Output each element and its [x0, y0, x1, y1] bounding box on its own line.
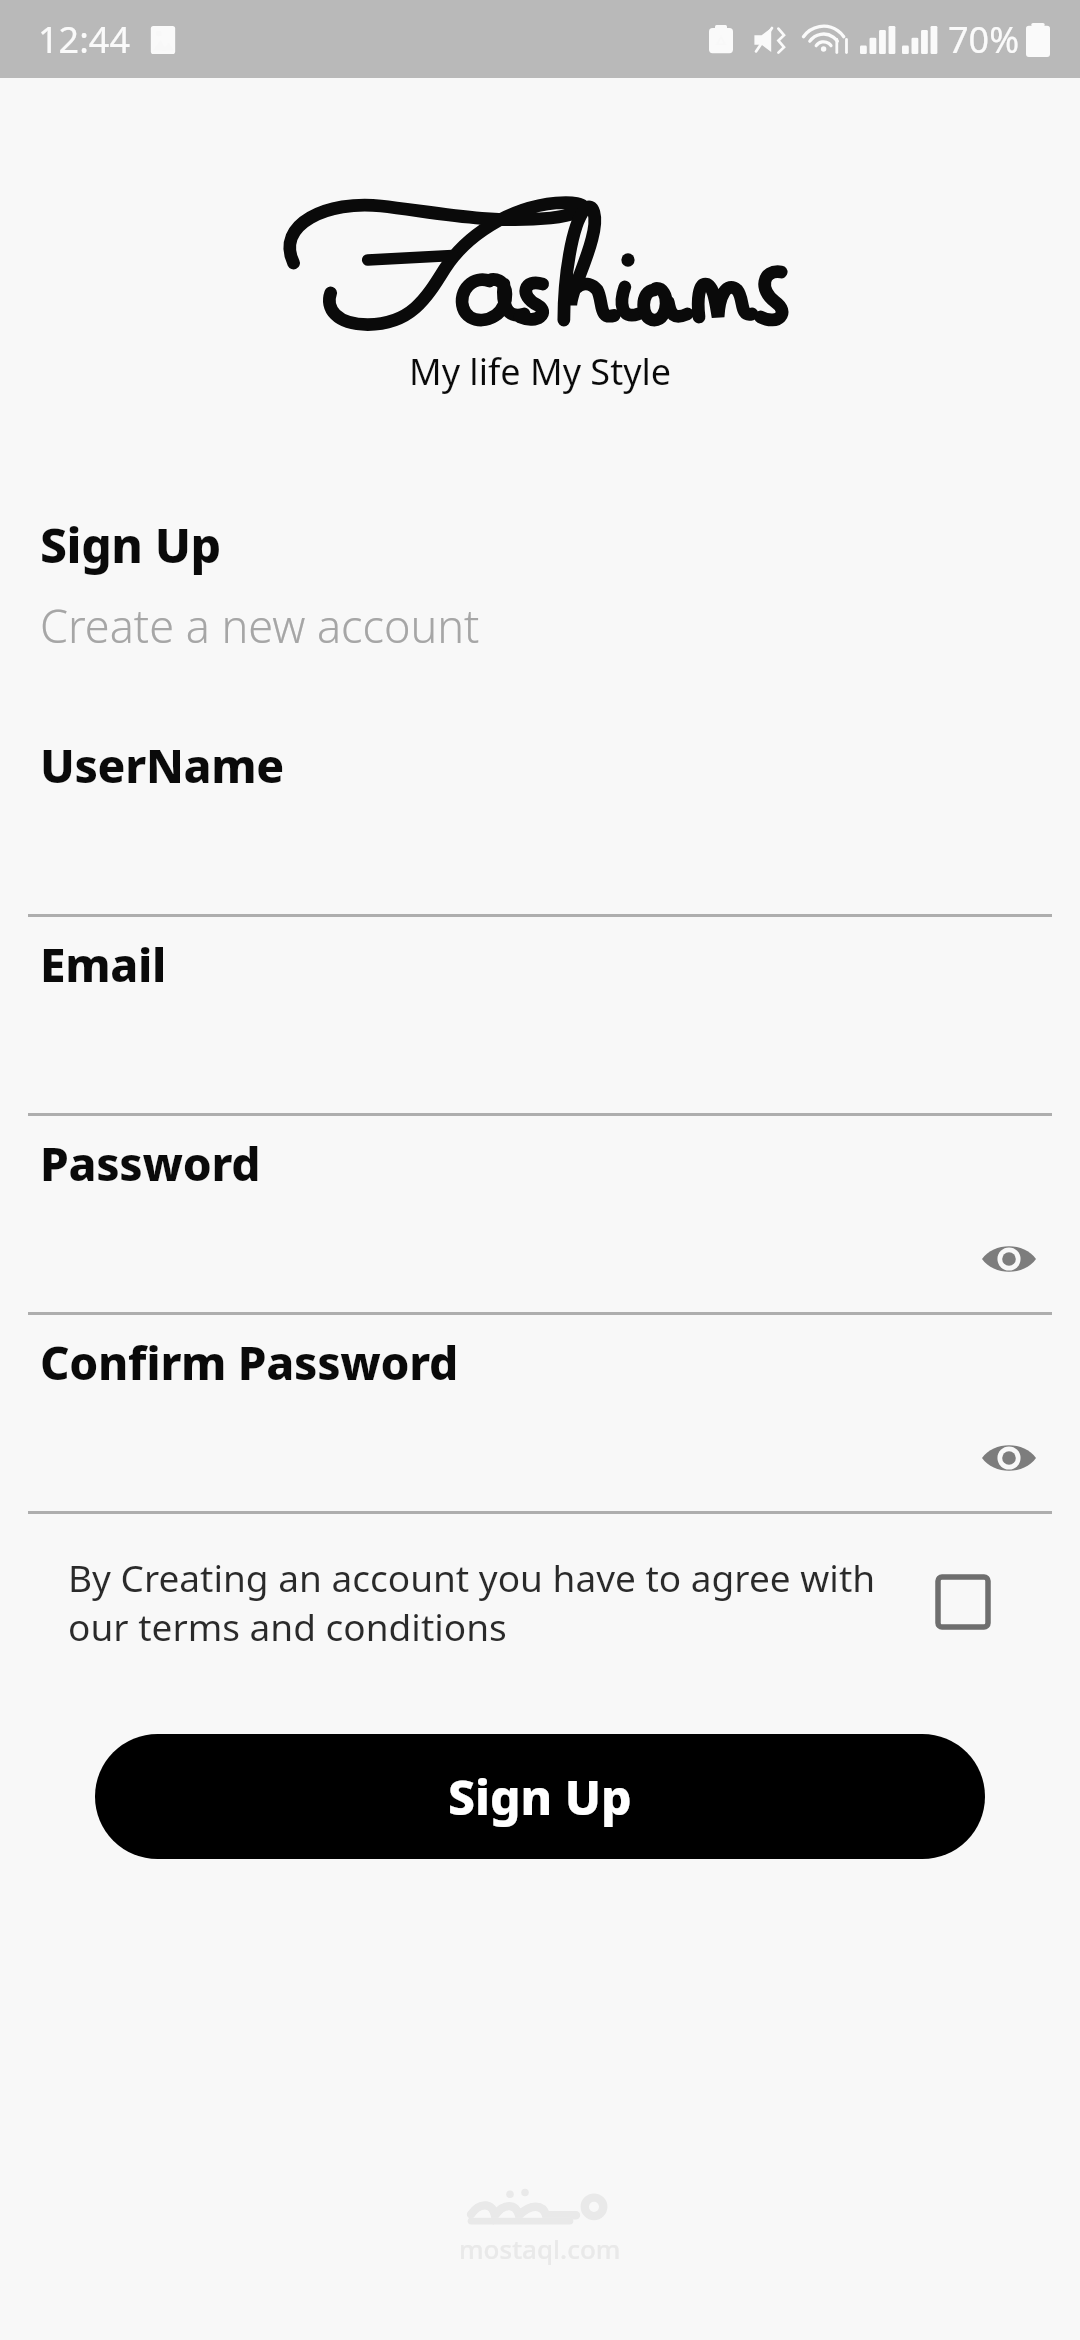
staticText: UserName [40, 734, 284, 797]
button[interactable]: Agree to terms and conditions [928, 1567, 998, 1637]
button[interactable]: Sign Up [95, 1734, 985, 1859]
staticText: 70% [948, 15, 1020, 64]
button[interactable]: Confirm Password [0, 1315, 1080, 1514]
staticText: Password [40, 1132, 261, 1195]
staticText: mostaql.com [459, 2231, 621, 2266]
staticText: Sign Up [40, 512, 221, 577]
staticText: Confirm Password [40, 1331, 459, 1394]
button[interactable]: UserName [0, 718, 1080, 917]
staticText: By Creating an account you have to agree… [68, 1552, 904, 1652]
staticText: Email [40, 933, 166, 996]
staticText: Sign Up [448, 1764, 632, 1829]
button[interactable]: Show password [978, 1228, 1040, 1290]
button[interactable]: Email [0, 917, 1080, 1116]
staticText: 12:44 [38, 15, 131, 64]
button[interactable]: Password [0, 1116, 1080, 1315]
button[interactable]: Show password [978, 1427, 1040, 1489]
staticText: Create a new account [40, 595, 480, 656]
staticText: My life My Style [409, 347, 672, 396]
